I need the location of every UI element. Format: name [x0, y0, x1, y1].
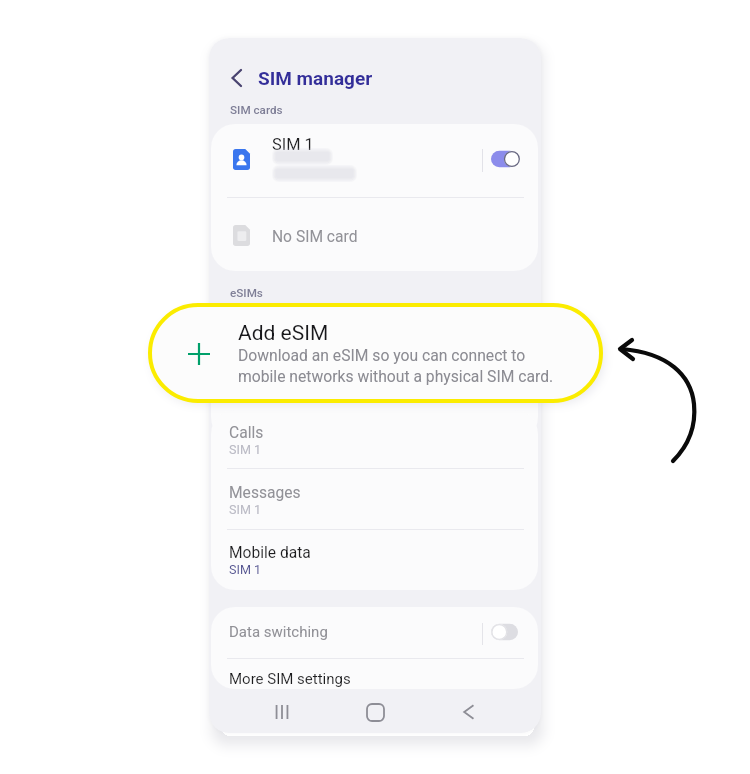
staticText: SIM manager [258, 67, 373, 89]
staticText: SIM cards [230, 103, 283, 117]
staticText: Add eSIM [238, 321, 329, 346]
staticText: No SIM card [272, 228, 358, 246]
staticText: SIM 1 [272, 135, 314, 154]
staticText: Mobile data [229, 544, 311, 562]
button[interactable]: Recents [235, 691, 329, 733]
staticText: Download an eSIM so you can connect to m… [238, 346, 554, 385]
button[interactable]: Back [422, 691, 515, 733]
staticText: Data switching [229, 623, 328, 641]
button[interactable]: Back [222, 64, 250, 92]
button[interactable]: Turn on [491, 623, 521, 641]
button[interactable]: Home [329, 691, 422, 733]
staticText: Calls [229, 424, 264, 442]
staticText: SIM 1 [229, 442, 262, 457]
button[interactable]: Add eSIM [150, 305, 601, 401]
button[interactable]: Turn off [491, 150, 521, 168]
staticText: SIM 1 [229, 562, 262, 577]
staticText: More SIM settings [229, 670, 351, 688]
staticText: SIM 1 [229, 502, 262, 517]
staticText: Messages [229, 484, 301, 502]
staticText: eSIMs [230, 286, 263, 300]
